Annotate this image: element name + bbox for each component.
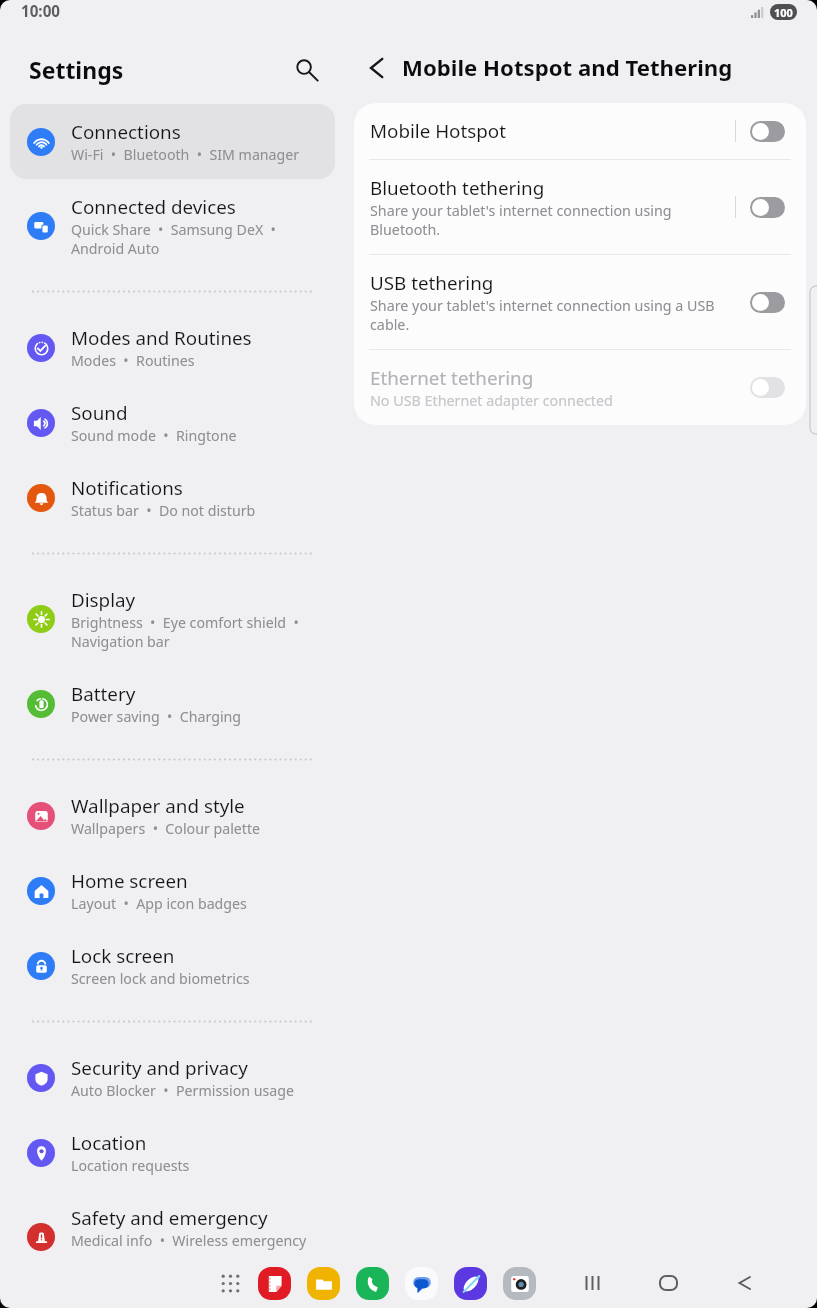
button[interactable]: Mobile Hotspot — [354, 103, 806, 159]
button[interactable]: Wallpaper and style — [10, 778, 335, 853]
staticText: Mobile Hotspot — [370, 118, 506, 144]
button[interactable]: Search — [284, 47, 328, 91]
button[interactable]: My Files — [307, 1267, 340, 1300]
button[interactable]: Security and privacy — [10, 1040, 335, 1115]
staticText: Settings — [29, 54, 124, 85]
button[interactable]: Home — [651, 1266, 685, 1300]
staticText: Security and privacy — [71, 1055, 248, 1081]
button[interactable]: Ethernet tethering — [354, 350, 806, 425]
staticText: Display — [71, 587, 136, 613]
button[interactable]: Back — [727, 1266, 761, 1300]
staticText: Wi-Fi • Bluetooth • SIM manager — [71, 145, 300, 164]
staticText: Bluetooth tethering — [370, 175, 545, 201]
button[interactable]: Back — [357, 48, 397, 88]
staticText: Auto Blocker • Permission usage — [71, 1081, 294, 1100]
staticText: Brightness • Eye comfort shield • Naviga… — [71, 613, 323, 651]
button[interactable]: Bluetooth tethering — [354, 160, 806, 254]
staticText: Share your tablet's internet connection … — [370, 201, 725, 239]
staticText: Battery — [71, 681, 136, 707]
staticText: Connections — [71, 119, 181, 145]
staticText: Wallpapers • Colour palette — [71, 819, 261, 838]
button[interactable]: USB tethering switch — [750, 292, 785, 313]
button[interactable]: Connections — [10, 104, 335, 179]
button[interactable]: Connected devices — [10, 179, 335, 273]
staticText: Sound mode • Ringtone — [71, 426, 237, 445]
staticText: Safety and emergency — [71, 1205, 268, 1231]
staticText: Modes • Routines — [71, 351, 195, 370]
button[interactable]: Ethernet tethering switch — [750, 377, 785, 398]
staticText: Home screen — [71, 868, 188, 894]
staticText: Quick Share • Samsung DeX • Android Auto — [71, 220, 323, 258]
button[interactable]: Camera — [503, 1267, 536, 1300]
staticText: Location requests — [71, 1156, 190, 1175]
button[interactable]: Sound — [10, 385, 335, 460]
button[interactable]: Safety and emergency — [10, 1190, 335, 1254]
staticText: Lock screen — [71, 943, 175, 969]
button[interactable]: Mobile Hotspot switch — [750, 121, 785, 142]
staticText: Notifications — [71, 475, 183, 501]
staticText: Medical info • Wireless emergency alerts — [71, 1231, 323, 1254]
button[interactable]: Bluetooth tethering switch — [750, 197, 785, 218]
staticText: Location — [71, 1130, 147, 1156]
staticText: Mobile Hotspot and Tethering — [402, 52, 733, 82]
button[interactable]: Home screen — [10, 853, 335, 928]
staticText: Layout • App icon badges — [71, 894, 247, 913]
staticText: Ethernet tethering — [370, 365, 534, 391]
button[interactable]: Lock screen — [10, 928, 335, 1003]
staticText: USB tethering — [370, 270, 494, 296]
button[interactable]: Phone — [356, 1267, 389, 1300]
button[interactable]: Modes and Routines — [10, 310, 335, 385]
staticText: Status bar • Do not disturb — [71, 501, 256, 520]
button[interactable]: Messages — [405, 1267, 438, 1300]
button[interactable]: Samsung Notes — [258, 1267, 291, 1300]
button[interactable]: Battery — [10, 666, 335, 741]
staticText: Wallpaper and style — [71, 793, 245, 819]
staticText: Share your tablet's internet connection … — [370, 296, 726, 334]
button[interactable]: Location — [10, 1115, 335, 1190]
button[interactable]: USB tethering — [354, 255, 806, 349]
staticText: Power saving • Charging — [71, 707, 242, 726]
button[interactable]: Display — [10, 572, 335, 666]
button[interactable]: Notifications — [10, 460, 335, 535]
staticText: No USB Ethernet adapter connected — [370, 391, 613, 410]
staticText: 10:00 — [21, 1, 61, 22]
staticText: Modes and Routines — [71, 325, 252, 351]
staticText: Sound — [71, 400, 128, 426]
button[interactable]: All apps — [213, 1266, 247, 1300]
staticText: Connected devices — [71, 194, 236, 220]
staticText: 100 — [774, 5, 793, 20]
button[interactable]: Internet — [454, 1267, 487, 1300]
staticText: Screen lock and biometrics — [71, 969, 250, 988]
button[interactable]: Recents — [575, 1266, 609, 1300]
